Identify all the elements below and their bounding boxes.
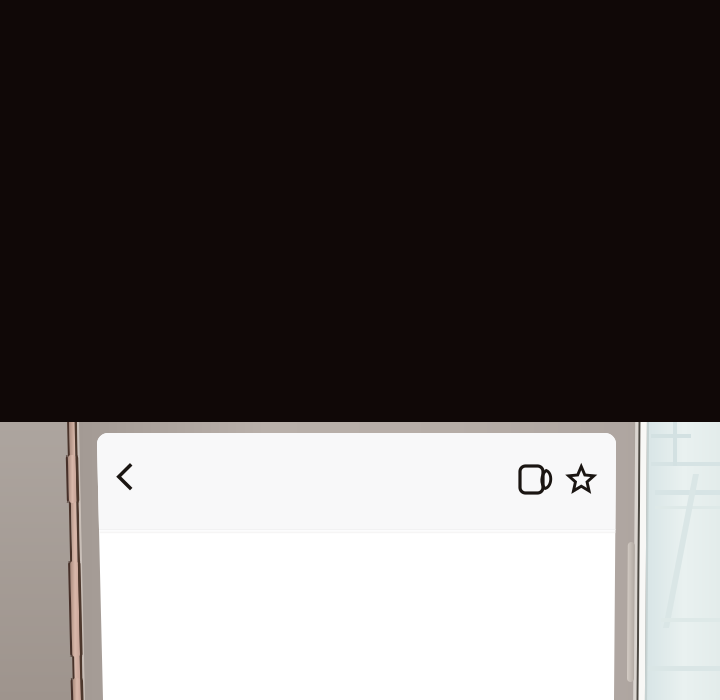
button[interactable]: Favourite: [560, 441, 618, 513]
button[interactable]: Video call: [502, 441, 560, 513]
button[interactable]: Back: [97, 441, 153, 513]
